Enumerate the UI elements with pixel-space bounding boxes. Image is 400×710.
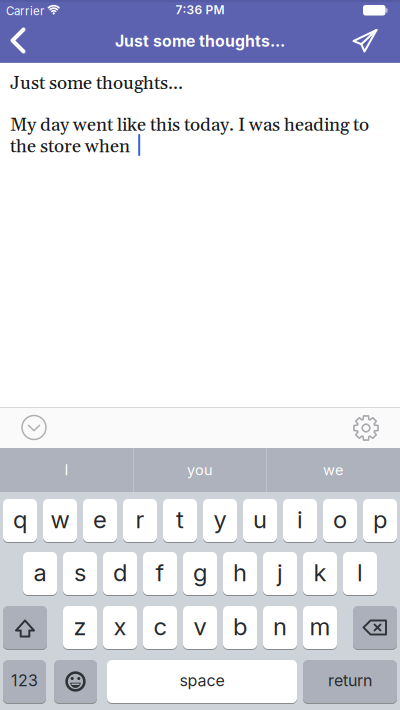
staticText: e bbox=[93, 505, 107, 534]
staticText: w bbox=[50, 505, 69, 534]
staticText: My day went like this today. I was headi… bbox=[10, 114, 369, 137]
staticText: Carrier bbox=[6, 4, 44, 18]
staticText: s bbox=[74, 558, 86, 587]
staticText: 123 bbox=[11, 671, 38, 690]
staticText: l bbox=[357, 558, 363, 587]
staticText: Just some thoughts... bbox=[115, 31, 285, 50]
staticText: o bbox=[333, 505, 347, 534]
staticText: Just some thoughts... bbox=[10, 72, 183, 95]
staticText: p bbox=[373, 505, 387, 534]
staticText: v bbox=[193, 612, 206, 641]
staticText: y bbox=[213, 505, 226, 534]
staticText: return bbox=[328, 671, 372, 690]
staticText: r bbox=[135, 505, 144, 534]
staticText: h bbox=[233, 558, 247, 587]
staticText: j bbox=[277, 558, 283, 587]
staticText: we bbox=[323, 461, 343, 479]
staticText: i bbox=[297, 505, 303, 534]
staticText: d bbox=[113, 558, 127, 587]
staticText: z bbox=[73, 612, 86, 641]
staticText: c bbox=[153, 612, 166, 641]
staticText: t bbox=[176, 505, 184, 534]
staticText: f bbox=[155, 558, 164, 587]
staticText: I bbox=[64, 461, 68, 479]
staticText: k bbox=[313, 558, 326, 587]
staticText: g bbox=[193, 558, 207, 587]
staticText: 7:36 PM bbox=[175, 3, 224, 17]
staticText: u bbox=[253, 505, 267, 534]
staticText: q bbox=[13, 505, 27, 534]
staticText: a bbox=[33, 558, 46, 587]
staticText: n bbox=[273, 612, 287, 641]
staticText: you bbox=[187, 461, 213, 479]
staticText: space bbox=[179, 671, 224, 690]
staticText: b bbox=[233, 612, 247, 641]
staticText: x bbox=[113, 612, 126, 641]
staticText: the store when bbox=[10, 135, 130, 159]
staticText: m bbox=[309, 612, 330, 641]
